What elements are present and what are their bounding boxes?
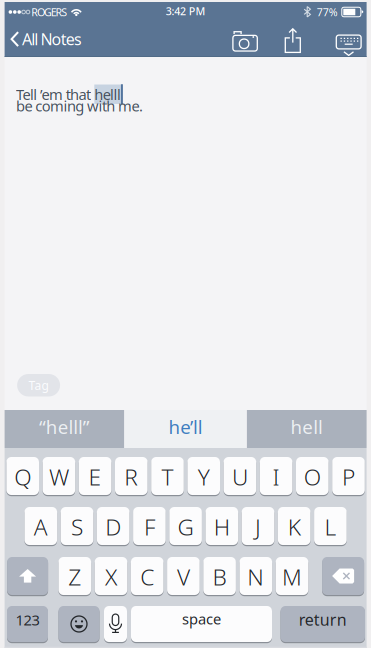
staticText: Tell ’em that: [16, 84, 94, 104]
staticText: H: [214, 512, 230, 542]
button[interactable]: Q: [6, 457, 39, 495]
button[interactable]: Dismiss Keyboard: [301, 29, 361, 49]
staticText: be coming with me.: [16, 96, 143, 115]
staticText: he’ll: [168, 414, 203, 439]
button[interactable]: B: [203, 557, 236, 595]
staticText: P: [342, 462, 355, 492]
staticText: R: [124, 462, 138, 492]
staticText: K: [288, 512, 301, 542]
button[interactable]: Space: [131, 606, 272, 642]
button[interactable]: All Notes: [5, 28, 82, 50]
staticText: O: [304, 462, 321, 492]
button[interactable]: X: [95, 557, 127, 595]
staticText: N: [247, 562, 264, 592]
staticText: E: [89, 462, 102, 492]
button[interactable]: E: [79, 457, 111, 495]
button[interactable]: D: [97, 507, 129, 545]
staticText: X: [105, 562, 117, 592]
button[interactable]: N: [239, 557, 272, 595]
staticText: G: [178, 512, 194, 542]
button[interactable]: I: [260, 457, 292, 495]
staticText: 3:42 PM: [166, 4, 205, 18]
button[interactable]: G: [169, 507, 202, 545]
staticText: C: [140, 562, 154, 592]
staticText: return: [299, 609, 347, 630]
staticText: V: [177, 562, 190, 592]
button[interactable]: Tag: [17, 374, 60, 396]
staticText: L: [324, 512, 336, 542]
button[interactable]: Camera: [233, 29, 257, 49]
button[interactable]: C: [131, 557, 163, 595]
staticText: hell: [291, 414, 323, 439]
staticText: Z: [68, 562, 81, 592]
button[interactable]: Dictate: [104, 606, 127, 642]
button[interactable]: A: [24, 507, 57, 545]
button[interactable]: K: [278, 507, 310, 545]
button[interactable]: Share: [257, 27, 301, 52]
staticText: ROGERS: [31, 5, 67, 19]
button[interactable]: Z: [58, 557, 91, 595]
button[interactable]: he’ll: [124, 410, 247, 448]
staticText: 123: [15, 610, 39, 629]
button[interactable]: Return: [280, 606, 365, 642]
staticText: 77%: [317, 5, 338, 19]
button[interactable]: U: [224, 457, 256, 495]
button[interactable]: V: [167, 557, 200, 595]
staticText: B: [213, 562, 227, 592]
staticText: D: [105, 512, 121, 542]
button[interactable]: L: [314, 507, 347, 545]
staticText: T: [161, 462, 173, 492]
staticText: F: [144, 512, 155, 542]
button[interactable]: hell: [247, 410, 367, 448]
staticText: Q: [14, 462, 31, 492]
staticText: A: [34, 512, 48, 542]
button[interactable]: Delete: [322, 557, 364, 595]
button[interactable]: S: [61, 507, 93, 545]
button[interactable]: Numbers: [7, 606, 48, 642]
staticText: helll: [94, 84, 121, 104]
staticText: S: [71, 512, 83, 542]
button[interactable]: O: [296, 457, 329, 495]
staticText: Tag: [29, 377, 49, 393]
staticText: All Notes: [22, 28, 82, 50]
staticText: “helll”: [39, 414, 90, 439]
button[interactable]: “helll”: [5, 410, 124, 448]
button[interactable]: F: [133, 507, 166, 545]
button[interactable]: Shift: [7, 557, 48, 595]
button[interactable]: M: [276, 557, 308, 595]
button[interactable]: Emoji: [58, 606, 99, 642]
staticText: J: [255, 512, 261, 542]
button[interactable]: W: [43, 457, 75, 495]
button[interactable]: P: [332, 457, 365, 495]
staticText: M: [282, 562, 302, 592]
button[interactable]: J: [242, 507, 274, 545]
staticText: Y: [198, 462, 210, 492]
staticText: space: [182, 609, 221, 628]
staticText: W: [49, 462, 69, 492]
button[interactable]: Y: [187, 457, 220, 495]
staticText: U: [232, 462, 248, 492]
button[interactable]: R: [115, 457, 148, 495]
button[interactable]: T: [151, 457, 184, 495]
button[interactable]: H: [205, 507, 238, 545]
staticText: I: [273, 462, 280, 492]
